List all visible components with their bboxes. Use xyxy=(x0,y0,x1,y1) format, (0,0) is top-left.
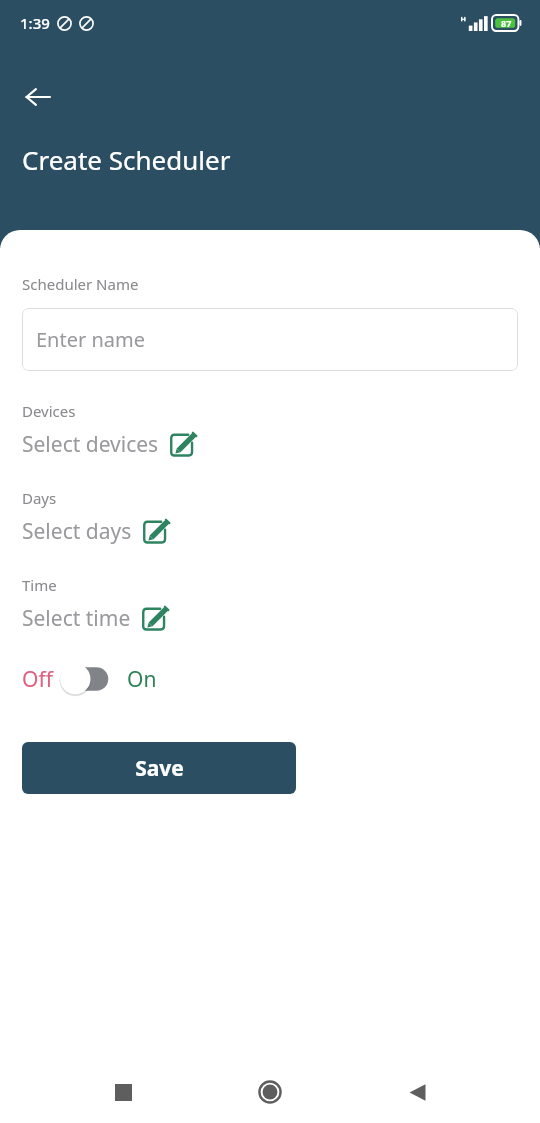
button[interactable]: Back xyxy=(393,1068,441,1116)
staticText: Devices xyxy=(22,401,76,421)
button[interactable]: Select days xyxy=(22,515,174,547)
button[interactable]: Toggle scheduler on or off xyxy=(59,660,115,698)
staticText: Off xyxy=(22,665,53,694)
button[interactable]: Save xyxy=(22,742,296,794)
staticText: Scheduler Name xyxy=(22,274,139,294)
staticText: 87 xyxy=(501,17,512,29)
staticText: Time xyxy=(22,575,57,595)
staticText: Enter name xyxy=(36,326,145,353)
staticText: Days xyxy=(22,488,57,508)
staticText: Create Scheduler xyxy=(22,142,231,177)
button[interactable]: Recent apps xyxy=(99,1068,147,1116)
staticText: Select days xyxy=(22,517,132,546)
staticText: Select devices xyxy=(22,430,159,459)
button[interactable]: Enter name xyxy=(22,308,518,371)
button[interactable]: Select time xyxy=(22,602,173,634)
staticText: Select time xyxy=(22,604,131,633)
staticText: On xyxy=(127,665,157,694)
staticText: 1:39 xyxy=(20,13,50,33)
button[interactable]: Select devices xyxy=(22,428,201,460)
staticText: Save xyxy=(135,754,184,783)
button[interactable]: Back xyxy=(14,73,62,121)
button[interactable]: Home xyxy=(246,1068,294,1116)
